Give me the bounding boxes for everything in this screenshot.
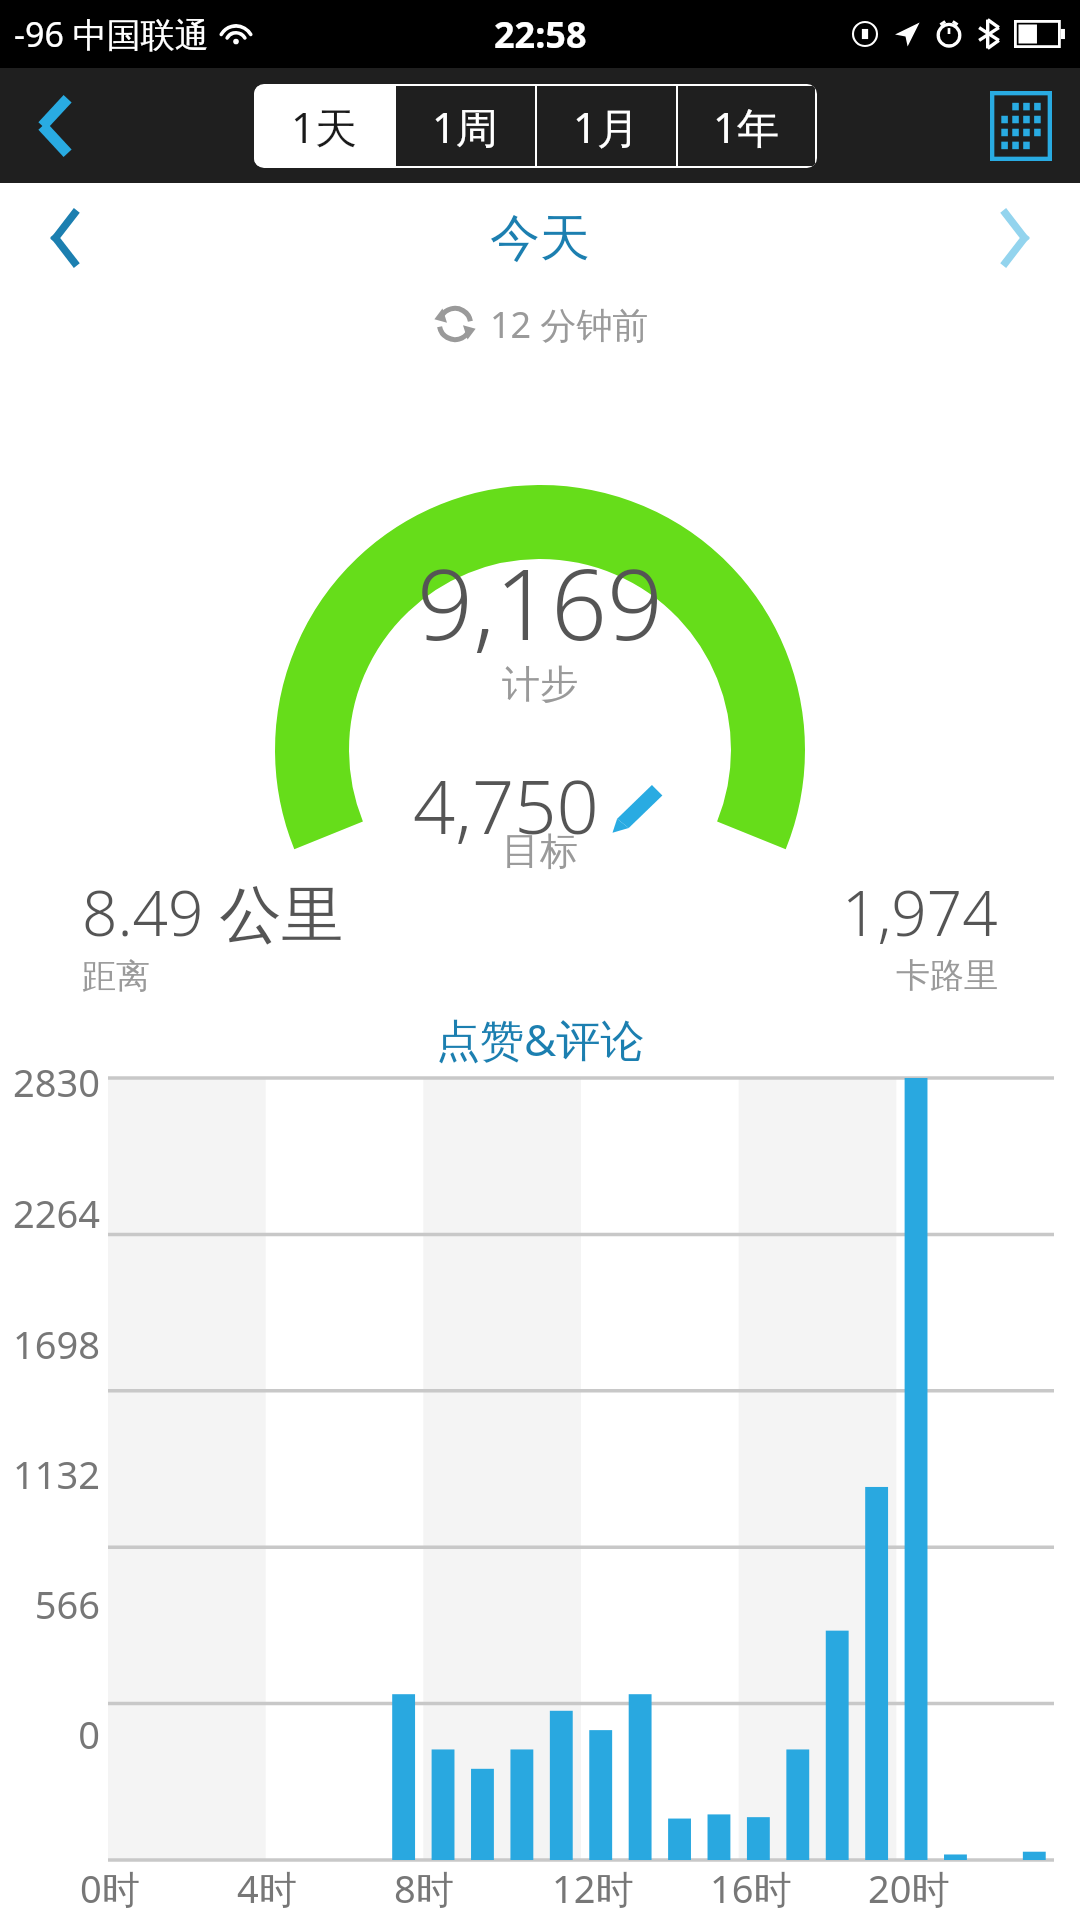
other: Edit goal (609, 777, 667, 835)
staticText: 4,750 (413, 755, 599, 856)
staticText: 1月 (573, 98, 640, 155)
staticText: 12 分钟前 (490, 300, 649, 349)
staticText: 计步 (502, 660, 578, 708)
button[interactable]: Calendar (962, 68, 1080, 183)
staticText: 目标 (502, 827, 578, 875)
button[interactable]: 4,750 (413, 755, 667, 856)
button[interactable]: 点赞&评论 (0, 1000, 1080, 1078)
staticText: 0 (78, 1708, 100, 1760)
button[interactable]: Previous day (0, 183, 130, 293)
staticText: 20时 (868, 1862, 950, 1914)
staticText: 12时 (552, 1862, 634, 1914)
staticText: 22:58 (494, 10, 587, 59)
staticText: 距离 (82, 955, 150, 998)
staticText: 8.49 公里 (82, 870, 344, 955)
button[interactable]: 12 分钟前 (0, 293, 1080, 355)
button[interactable]: 1周 (396, 86, 535, 166)
staticText: 8时 (394, 1862, 454, 1914)
staticText: 1698 (13, 1318, 100, 1370)
staticText: 1天 (291, 98, 358, 155)
button[interactable]: Back (0, 68, 110, 183)
staticText: 4时 (237, 1862, 297, 1914)
staticText: 2264 (13, 1187, 100, 1239)
staticText: 9,169 (417, 535, 663, 668)
staticText: 点赞&评论 (436, 1009, 645, 1069)
staticText: 566 (34, 1578, 100, 1630)
button[interactable]: 1年 (678, 86, 815, 166)
button[interactable]: Next day (950, 183, 1080, 293)
staticText: -96 中国联通 (14, 11, 209, 57)
staticText: 1132 (13, 1448, 100, 1500)
staticText: 1,974 (842, 870, 998, 954)
button[interactable]: 1,974 (540, 870, 998, 997)
staticText: 1年 (713, 98, 780, 155)
staticText: 16时 (710, 1862, 792, 1914)
button[interactable]: 1月 (537, 86, 676, 166)
staticText: 今天 (490, 207, 590, 270)
button[interactable]: 8.49 公里 (82, 870, 540, 998)
staticText: 2830 (13, 1056, 100, 1108)
staticText: 0时 (80, 1862, 140, 1914)
button[interactable]: 1天 (254, 86, 394, 166)
staticText: 卡路里 (896, 954, 998, 997)
staticText: 1周 (432, 98, 499, 155)
